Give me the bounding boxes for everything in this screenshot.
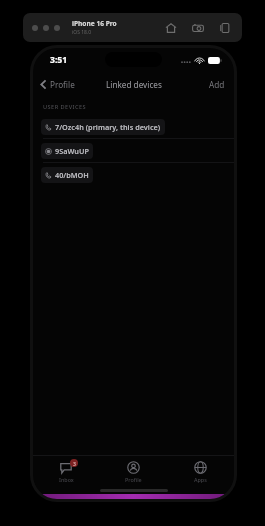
button[interactable]: Record screen <box>216 19 233 36</box>
button[interactable]: Window control <box>54 25 60 31</box>
staticText: 9SaWuUP <box>55 146 89 156</box>
button[interactable]: Apps <box>167 455 234 488</box>
staticText: iPhone 16 Pro <box>72 19 117 28</box>
staticText: 40/bMOH <box>55 170 89 180</box>
staticText: 3:51 <box>50 54 68 66</box>
button[interactable]: 7/Ozc4h (primary, this device) <box>33 115 234 138</box>
staticText: USER DEVICES <box>43 103 87 111</box>
staticText: Profile <box>125 476 142 483</box>
staticText: Linked devices <box>106 79 162 90</box>
staticText: 3 <box>73 460 76 467</box>
staticText: Add <box>209 79 225 90</box>
button[interactable]: Profile <box>33 75 81 94</box>
button[interactable]: Profile <box>100 455 167 488</box>
button[interactable]: Add <box>200 75 234 94</box>
staticText: Apps <box>194 476 207 483</box>
staticText: iOS 18.0 <box>72 29 92 36</box>
staticText: Profile <box>50 79 75 90</box>
staticText: 7/Ozc4h (primary, this device) <box>55 122 161 132</box>
button[interactable]: Home <box>162 19 179 36</box>
button[interactable]: Screenshot <box>189 19 206 36</box>
button[interactable]: 3 <box>33 455 100 488</box>
button[interactable]: 40/bMOH <box>33 163 234 186</box>
button[interactable]: 9SaWuUP <box>33 139 234 162</box>
staticText: Inbox <box>59 476 74 483</box>
button[interactable]: Window control <box>32 25 38 31</box>
button[interactable]: Window control <box>43 25 49 31</box>
